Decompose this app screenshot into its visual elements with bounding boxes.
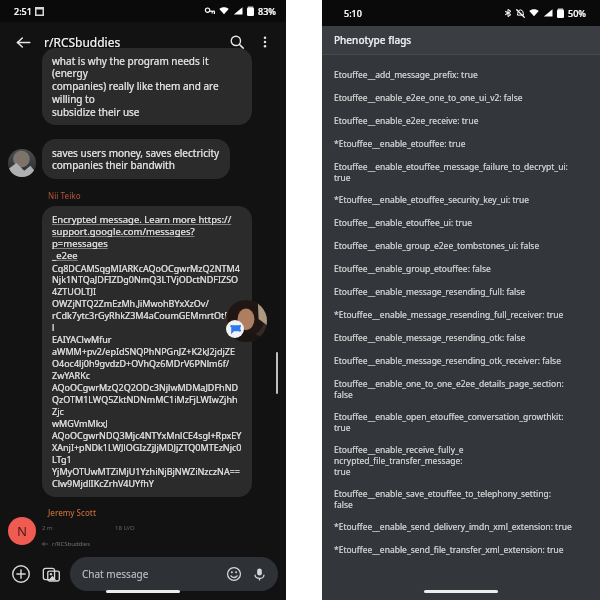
button[interactable]: Etouffee__enable_save_etouffee_to_teleph…	[322, 483, 600, 516]
button[interactable]: *Etouffee__enable_send_delivery_imdn_xml…	[322, 516, 600, 539]
staticText: Jeremy Scott	[48, 507, 96, 518]
staticText: *Etouffee__enable_send_file_transfer_xml…	[334, 544, 564, 556]
staticText: what is why the program needs it (energy…	[52, 54, 242, 119]
button[interactable]: Add attachment	[8, 561, 34, 587]
button[interactable]: Etouffee__enable_e2ee_receive: true	[322, 110, 600, 133]
button[interactable]: Gallery	[38, 561, 64, 587]
button[interactable]: More options	[252, 29, 278, 55]
staticText: Etouffee__enable_message_resending_otk_r…	[334, 355, 561, 367]
staticText: Encrypted message. Learn more https:// s…	[52, 213, 242, 262]
button[interactable]: Etouffee__enable_group_e2ee_tombstones_u…	[322, 235, 600, 258]
button[interactable]: saves users money, saves electricity com…	[42, 139, 230, 179]
staticText: Etouffee__enable_open_etouffee_conversat…	[334, 411, 564, 433]
staticText: Etouffee__enable_e2ee_one_to_one_ui_v2: …	[334, 92, 523, 104]
button[interactable]: Etouffee__enable_etouffee_message_failur…	[322, 156, 600, 189]
staticText: Phenotype flags	[334, 33, 412, 47]
staticText: N	[17, 522, 28, 540]
staticText: 2 m	[42, 524, 53, 532]
button[interactable]: Chat message	[70, 557, 278, 591]
button[interactable]: Etouffee__enable_open_etouffee_conversat…	[322, 406, 600, 439]
button[interactable]: Encrypted message. Learn more https:// s…	[42, 206, 252, 497]
button[interactable]: Etouffee__enable_group_etouffee: false	[322, 258, 600, 281]
button[interactable]: Back	[8, 27, 38, 57]
staticText: Etouffee__enable_etouffee_ui: true	[334, 217, 473, 229]
button[interactable]: *Etouffee__enable_send_file_transfer_xml…	[322, 539, 600, 562]
staticText: *Etouffee__enable_send_delivery_imdn_xml…	[334, 521, 572, 533]
staticText: 50%	[568, 7, 586, 19]
staticText: *Etouffee__enable_etouffee: true	[334, 138, 466, 150]
button[interactable]: Etouffee__enable_etouffee_ui: true	[322, 212, 600, 235]
staticText: 5:10	[344, 7, 362, 19]
staticText: Cq8DCAMSqgMIARKcAQoOCgwrMzQ2NTM4Njk1NTQa…	[52, 262, 242, 490]
staticText: *Etouffee__enable_message_resending_full…	[334, 309, 564, 321]
staticText: Etouffee__add_message_prefix: true	[334, 69, 478, 81]
staticText: r/RCSbuddies	[52, 540, 91, 548]
button[interactable]: what is why the program needs it (energy…	[42, 48, 252, 125]
button[interactable]: Etouffee__enable_one_to_one_e2ee_details…	[322, 373, 600, 406]
staticText: Etouffee__enable_message_resending_full:…	[334, 286, 526, 298]
button[interactable]: *Etouffee__enable_message_resending_full…	[322, 304, 600, 327]
staticText: 2:51	[14, 5, 32, 17]
staticText: saves users money, saves electricity com…	[52, 146, 220, 172]
staticText: 18 U/O	[115, 524, 135, 532]
staticText: Etouffee__enable_save_etouffee_to_teleph…	[334, 488, 551, 510]
staticText: Etouffee__enable_group_e2ee_tombstones_u…	[334, 240, 540, 252]
button[interactable]: Etouffee__add_message_prefix: true	[322, 64, 600, 87]
button[interactable]: Search	[222, 27, 252, 57]
staticText: Etouffee__enable_group_etouffee: false	[334, 263, 491, 275]
staticText: Etouffee__enable_receive_fully_e ncrypte…	[334, 444, 464, 477]
button[interactable]: *Etouffee__enable_etouffee: true	[322, 133, 600, 156]
staticText: 83%	[258, 5, 276, 17]
staticText: Chat message	[82, 567, 227, 581]
button[interactable]: *Etouffee__enable_etouffee_security_key_…	[322, 189, 600, 212]
button[interactable]: Etouffee__enable_message_resending_otk_r…	[322, 350, 600, 373]
staticText: *Etouffee__enable_etouffee_security_key_…	[334, 194, 530, 206]
button[interactable]: Etouffee__enable_receive_fully_e ncrypte…	[322, 439, 600, 483]
button[interactable]: Etouffee__enable_e2ee_one_to_one_ui_v2: …	[322, 87, 600, 110]
staticText: Etouffee__enable_e2ee_receive: true	[334, 115, 479, 127]
button[interactable]: Scroll to bottom	[122, 562, 156, 596]
staticText: r/RCSbuddies	[44, 34, 222, 50]
button[interactable]: Chat	[226, 320, 244, 338]
button[interactable]: Etouffee__enable_message_resending_full:…	[322, 281, 600, 304]
staticText: Etouffee__enable_one_to_one_e2ee_details…	[334, 378, 564, 400]
button[interactable]: Etouffee__enable_message_resending_otk: …	[322, 327, 600, 350]
staticText: Etouffee__enable_etouffee_message_failur…	[334, 161, 568, 183]
staticText: Etouffee__enable_message_resending_otk: …	[334, 332, 526, 344]
staticText: Nii Teiko	[48, 190, 81, 201]
